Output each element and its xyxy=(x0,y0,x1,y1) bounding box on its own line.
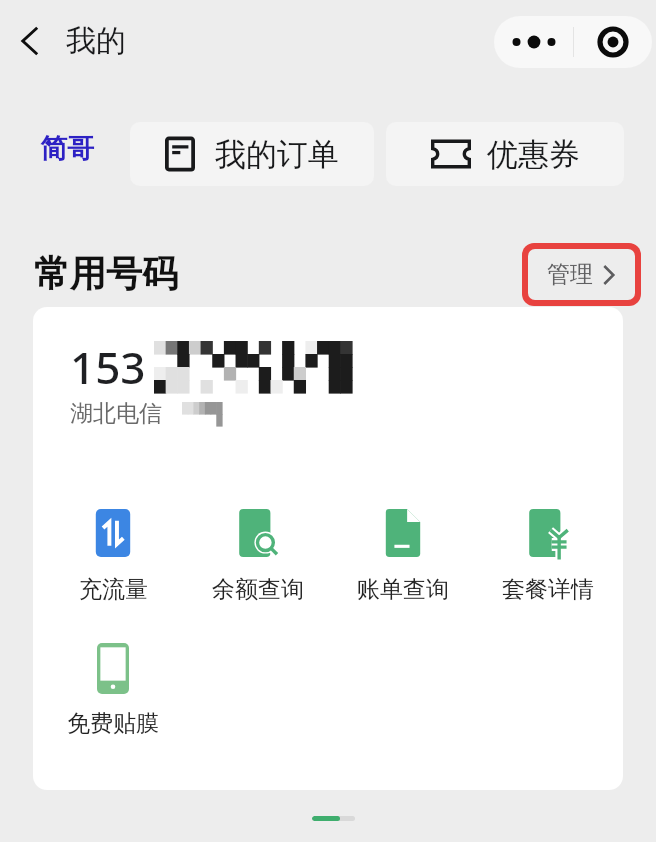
button[interactable]: 余额查询 xyxy=(202,509,314,617)
staticText: 153 xyxy=(70,337,146,397)
button[interactable]: Back xyxy=(8,19,52,63)
staticText: 套餐详情 xyxy=(502,575,594,604)
button[interactable]: 我的订单 xyxy=(130,122,374,186)
staticText: 我的 xyxy=(66,22,126,60)
staticText: 我的订单 xyxy=(215,135,339,174)
button[interactable]: 账单查询 xyxy=(347,509,459,617)
staticText: 充流量 xyxy=(79,575,148,604)
button[interactable]: 套餐详情 xyxy=(492,509,604,617)
staticText: 管理 xyxy=(547,260,593,289)
staticText: 免费贴膜 xyxy=(67,709,159,738)
staticText: 简哥 xyxy=(40,132,94,166)
button[interactable]: Close mini program xyxy=(574,16,652,68)
button[interactable]: 优惠券 xyxy=(386,122,624,186)
staticText: 常用号码 xyxy=(34,251,178,296)
button[interactable]: 管理 xyxy=(528,249,635,300)
button[interactable]: 充流量 xyxy=(57,509,169,617)
button[interactable]: 免费贴膜 xyxy=(57,643,169,751)
staticText: 余额查询 xyxy=(212,575,304,604)
staticText: 优惠券 xyxy=(487,135,580,174)
staticText: 账单查询 xyxy=(357,575,449,604)
staticText: 湖北电信 xyxy=(70,399,162,428)
button[interactable]: More options xyxy=(494,16,573,68)
